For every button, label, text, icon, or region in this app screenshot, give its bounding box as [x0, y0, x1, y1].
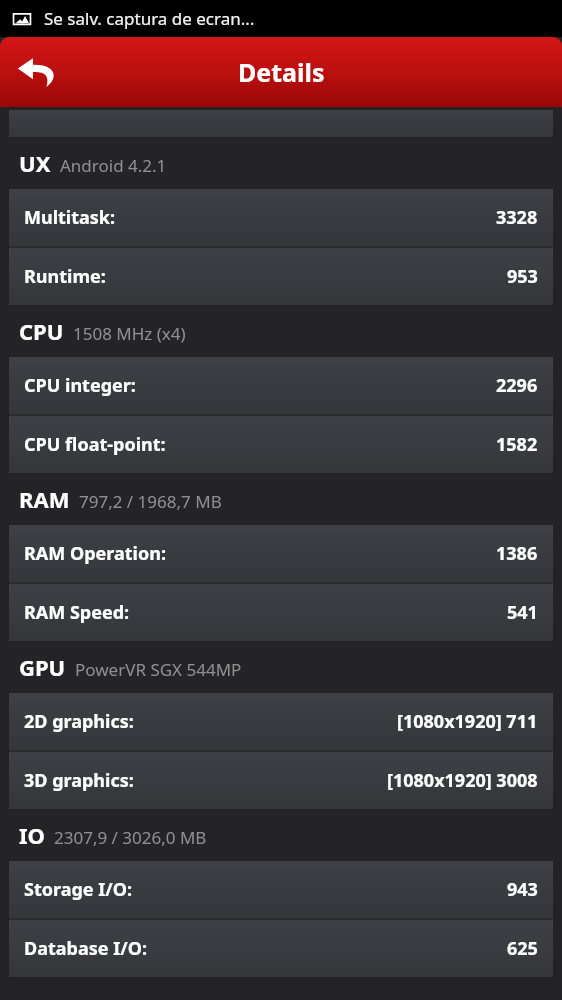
- staticText: RAM: [19, 484, 70, 514]
- staticText: 1508 MHz (x4): [73, 322, 186, 345]
- staticText: CPU: [19, 316, 64, 346]
- staticText: RAM Speed:: [24, 600, 130, 625]
- staticText: 797,2 / 1968,7 MB: [79, 490, 222, 513]
- staticText: 2D graphics:: [24, 709, 134, 734]
- button[interactable]: Back: [0, 37, 76, 107]
- staticText: Se salv. captura de ecran...: [44, 7, 255, 30]
- staticText: CPU integer:: [24, 373, 136, 398]
- staticText: Storage I/O:: [24, 877, 133, 902]
- staticText: Multitask:: [24, 205, 116, 230]
- staticText: UX: [19, 148, 51, 178]
- button[interactable]: Database I/O:: [9, 920, 553, 977]
- staticText: 943: [507, 877, 538, 902]
- staticText: Details: [238, 55, 325, 89]
- staticText: [1080x1920] 3008: [387, 768, 538, 793]
- staticText: Runtime:: [24, 264, 106, 289]
- staticText: [1080x1920] 711: [397, 709, 538, 734]
- staticText: Android 4.2.1: [60, 154, 167, 177]
- staticText: 3D graphics:: [24, 768, 134, 793]
- button[interactable]: Runtime:: [9, 248, 553, 305]
- staticText: 3328: [496, 205, 538, 230]
- button[interactable]: Storage I/O:: [9, 861, 553, 918]
- staticText: RAM Operation:: [24, 541, 166, 566]
- staticText: 953: [507, 264, 538, 289]
- staticText: GPU: [19, 652, 66, 682]
- button[interactable]: RAM Speed:: [9, 584, 553, 641]
- button[interactable]: RAM Operation:: [9, 525, 553, 582]
- button[interactable]: 2D graphics:: [9, 693, 553, 750]
- staticText: Database I/O:: [24, 936, 147, 961]
- staticText: IO: [19, 820, 45, 850]
- button[interactable]: [9, 110, 553, 137]
- button[interactable]: CPU integer:: [9, 357, 553, 414]
- staticText: 541: [507, 600, 538, 625]
- staticText: 2307,9 / 3026,0 MB: [54, 826, 207, 849]
- staticText: 625: [507, 936, 538, 961]
- button[interactable]: CPU float-point:: [9, 416, 553, 473]
- button[interactable]: 3D graphics:: [9, 752, 553, 809]
- staticText: 1386: [496, 541, 538, 566]
- button[interactable]: Multitask:: [9, 189, 553, 246]
- staticText: 2296: [496, 373, 538, 398]
- staticText: CPU float-point:: [24, 432, 166, 457]
- staticText: PowerVR SGX 544MP: [75, 658, 242, 681]
- staticText: 1582: [496, 432, 538, 457]
